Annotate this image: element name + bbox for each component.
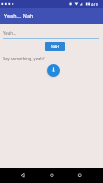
staticText: Yeah...: [3, 30, 17, 36]
staticText: Say something, yeah?: [3, 56, 45, 62]
button[interactable]: Back: [15, 168, 103, 183]
staticText: Yeah... Nah: [4, 12, 34, 19]
button[interactable]: Record voice: [47, 64, 60, 77]
staticText: 4:19: [91, 2, 98, 6]
button[interactable]: NAH: [45, 42, 65, 51]
button[interactable]: Recent apps: [72, 168, 103, 183]
button[interactable]: Home: [44, 168, 103, 183]
button[interactable]: Yeah...: [0, 24, 103, 41]
staticText: NAH: [51, 44, 60, 49]
